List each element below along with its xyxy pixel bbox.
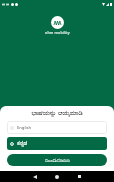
- staticText: English: [17, 125, 32, 131]
- staticText: ohm mobility: [45, 30, 70, 35]
- button[interactable]: ಮುಂದುವರಿಯಿರಿ: [7, 154, 107, 166]
- button[interactable]: Home: [46, 171, 68, 182]
- button[interactable]: Recent apps: [68, 171, 90, 182]
- staticText: ಮುಂದುವರಿಯಿರಿ: [45, 158, 70, 163]
- button[interactable]: ಕನ್ನಡ: [7, 137, 107, 150]
- staticText: ಭಾಷೆಯನ್ನು ಆಯ್ಕೆಮಾಡಿ: [31, 108, 83, 117]
- button[interactable]: Back: [24, 171, 46, 182]
- button[interactable]: English: [7, 121, 107, 134]
- staticText: ಕನ್ನಡ: [17, 141, 28, 147]
